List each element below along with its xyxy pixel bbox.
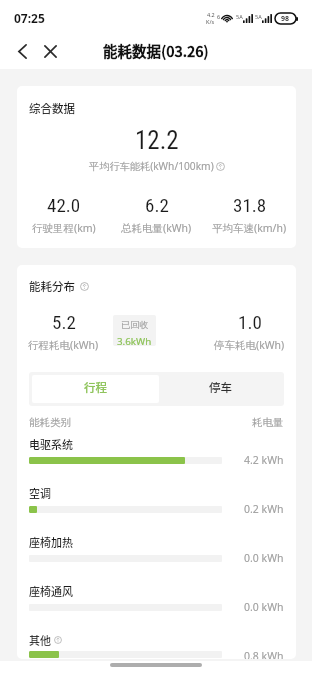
staticText: 0.8 kWh [244,649,284,659]
staticText: 5.2 [52,311,76,333]
staticText: 4.2 kWh [244,453,284,467]
staticText: 07:25 [14,10,45,26]
staticText: 已回收 [121,319,149,331]
staticText: 座椅加热 [29,534,73,550]
staticText: 31.8 [233,194,267,216]
staticText: 0.0 kWh [244,600,284,614]
staticText: 总耗电量(kWh) [121,221,192,235]
staticText: 能耗数据(03.26) [103,40,209,61]
staticText: 5A [236,13,243,20]
staticText: 能耗类别 [29,416,71,429]
staticText: 其他 [29,632,51,648]
staticText: 能耗分布 [29,278,75,295]
staticText: 42.0 [47,194,81,216]
staticText: K/s [206,18,215,25]
staticText: 0.0 kWh [244,551,284,565]
staticText: 电驱系统 [29,436,73,452]
staticText: 平均行车能耗(kWh/100km) [89,159,214,173]
staticText: 1.0 [238,311,262,333]
button[interactable]: 停车 [159,375,281,403]
staticText: 3.6kWh [117,335,152,346]
staticText: 6.2 [145,194,169,216]
staticText: 4.2 [207,11,215,18]
staticText: 12.2 [135,126,179,155]
button[interactable]: Back [10,39,34,63]
staticText: 6 [217,13,221,20]
staticText: 5A [255,13,262,20]
staticText: 行程耗电(kWh) [28,338,99,352]
staticText: 耗电量 [252,416,284,429]
staticText: 座椅通风 [29,583,73,599]
button[interactable]: Close [38,39,62,63]
staticText: 行程 [84,379,107,396]
staticText: 空调 [29,485,51,501]
button[interactable]: 行程 [32,375,159,403]
staticText: 0.2 kWh [244,502,284,516]
staticText: 平均车速(km/h) [212,221,287,235]
staticText: 停车 [209,379,232,396]
staticText: 综合数据 [29,100,75,117]
staticText: 行驶里程(km) [32,221,96,235]
staticText: 98 [281,14,290,24]
staticText: 停车耗电(kWh) [214,338,285,352]
